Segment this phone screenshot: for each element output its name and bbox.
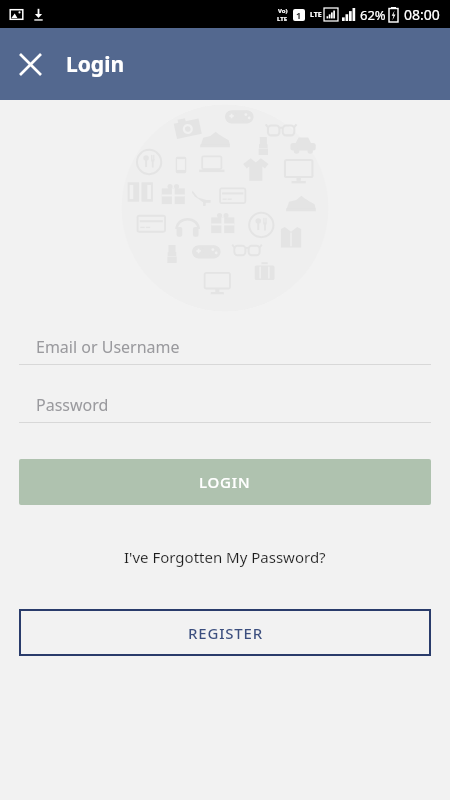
staticText: Password <box>36 394 109 416</box>
button[interactable]: Email or Username <box>19 330 431 365</box>
staticText: REGISTER <box>188 623 263 643</box>
button[interactable]: LOGIN <box>19 459 431 505</box>
staticText: LOGIN <box>199 472 251 492</box>
staticText: Login <box>66 50 125 79</box>
staticText: Vo) <box>278 7 288 15</box>
staticText: I've Forgotten My Password? <box>124 547 326 567</box>
staticText: 62% <box>360 6 386 24</box>
button[interactable]: REGISTER <box>19 609 431 656</box>
staticText: Email or Username <box>36 336 180 358</box>
staticText: 1 <box>296 9 302 21</box>
staticText: LTE <box>310 10 322 20</box>
staticText: 08:00 <box>404 5 440 24</box>
button[interactable]: Close <box>6 40 54 88</box>
staticText: LTE <box>277 15 288 23</box>
button[interactable]: Password <box>19 388 431 423</box>
button[interactable]: I've Forgotten My Password? <box>0 541 450 573</box>
